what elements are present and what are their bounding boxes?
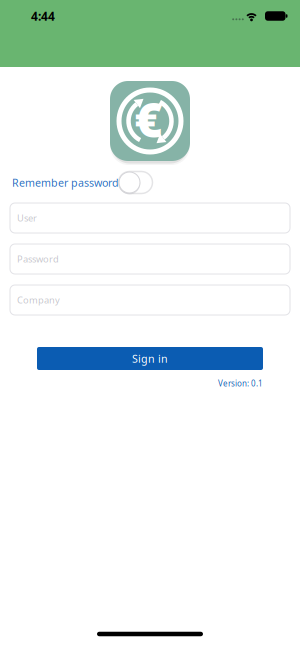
button[interactable]: Remember password bbox=[0, 170, 300, 195]
staticText: Sign in bbox=[132, 351, 168, 366]
button[interactable]: User bbox=[10, 203, 290, 233]
button[interactable]: Password bbox=[10, 244, 290, 274]
staticText: Version: 0.1 bbox=[218, 378, 263, 389]
staticText: Company bbox=[17, 294, 60, 306]
staticText: User bbox=[17, 212, 37, 224]
staticText: Remember password bbox=[12, 175, 119, 190]
staticText: 4:44 bbox=[31, 8, 55, 24]
button[interactable]: Sign in bbox=[37, 347, 263, 370]
staticText: € bbox=[134, 87, 162, 151]
button[interactable]: Company bbox=[10, 285, 290, 315]
staticText: Password bbox=[17, 253, 59, 265]
